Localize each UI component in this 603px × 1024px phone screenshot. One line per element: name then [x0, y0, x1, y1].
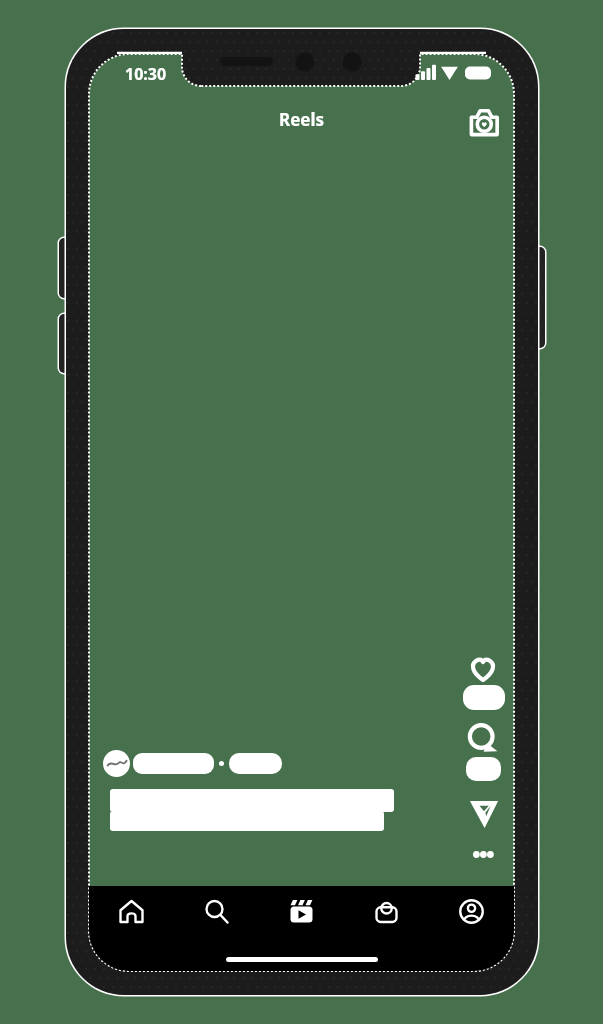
- button[interactable]: Shop: [344, 888, 429, 934]
- button[interactable]: Search: [174, 888, 259, 934]
- button[interactable]: Follow: [229, 753, 282, 774]
- staticText: Reels: [89, 108, 514, 131]
- button[interactable]: Home: [89, 888, 174, 934]
- button[interactable]: Username: [133, 753, 214, 774]
- button[interactable]: More options: [473, 848, 494, 861]
- button[interactable]: Share: [469, 798, 499, 828]
- button[interactable]: Reels: [259, 888, 344, 934]
- staticText: 10:30: [125, 63, 167, 85]
- button[interactable]: Like: [466, 651, 500, 685]
- button[interactable]: Profile picture: [103, 750, 130, 777]
- button[interactable]: Comment: [466, 721, 500, 755]
- button[interactable]: Camera: [467, 105, 501, 139]
- button[interactable]: Profile: [429, 888, 514, 934]
